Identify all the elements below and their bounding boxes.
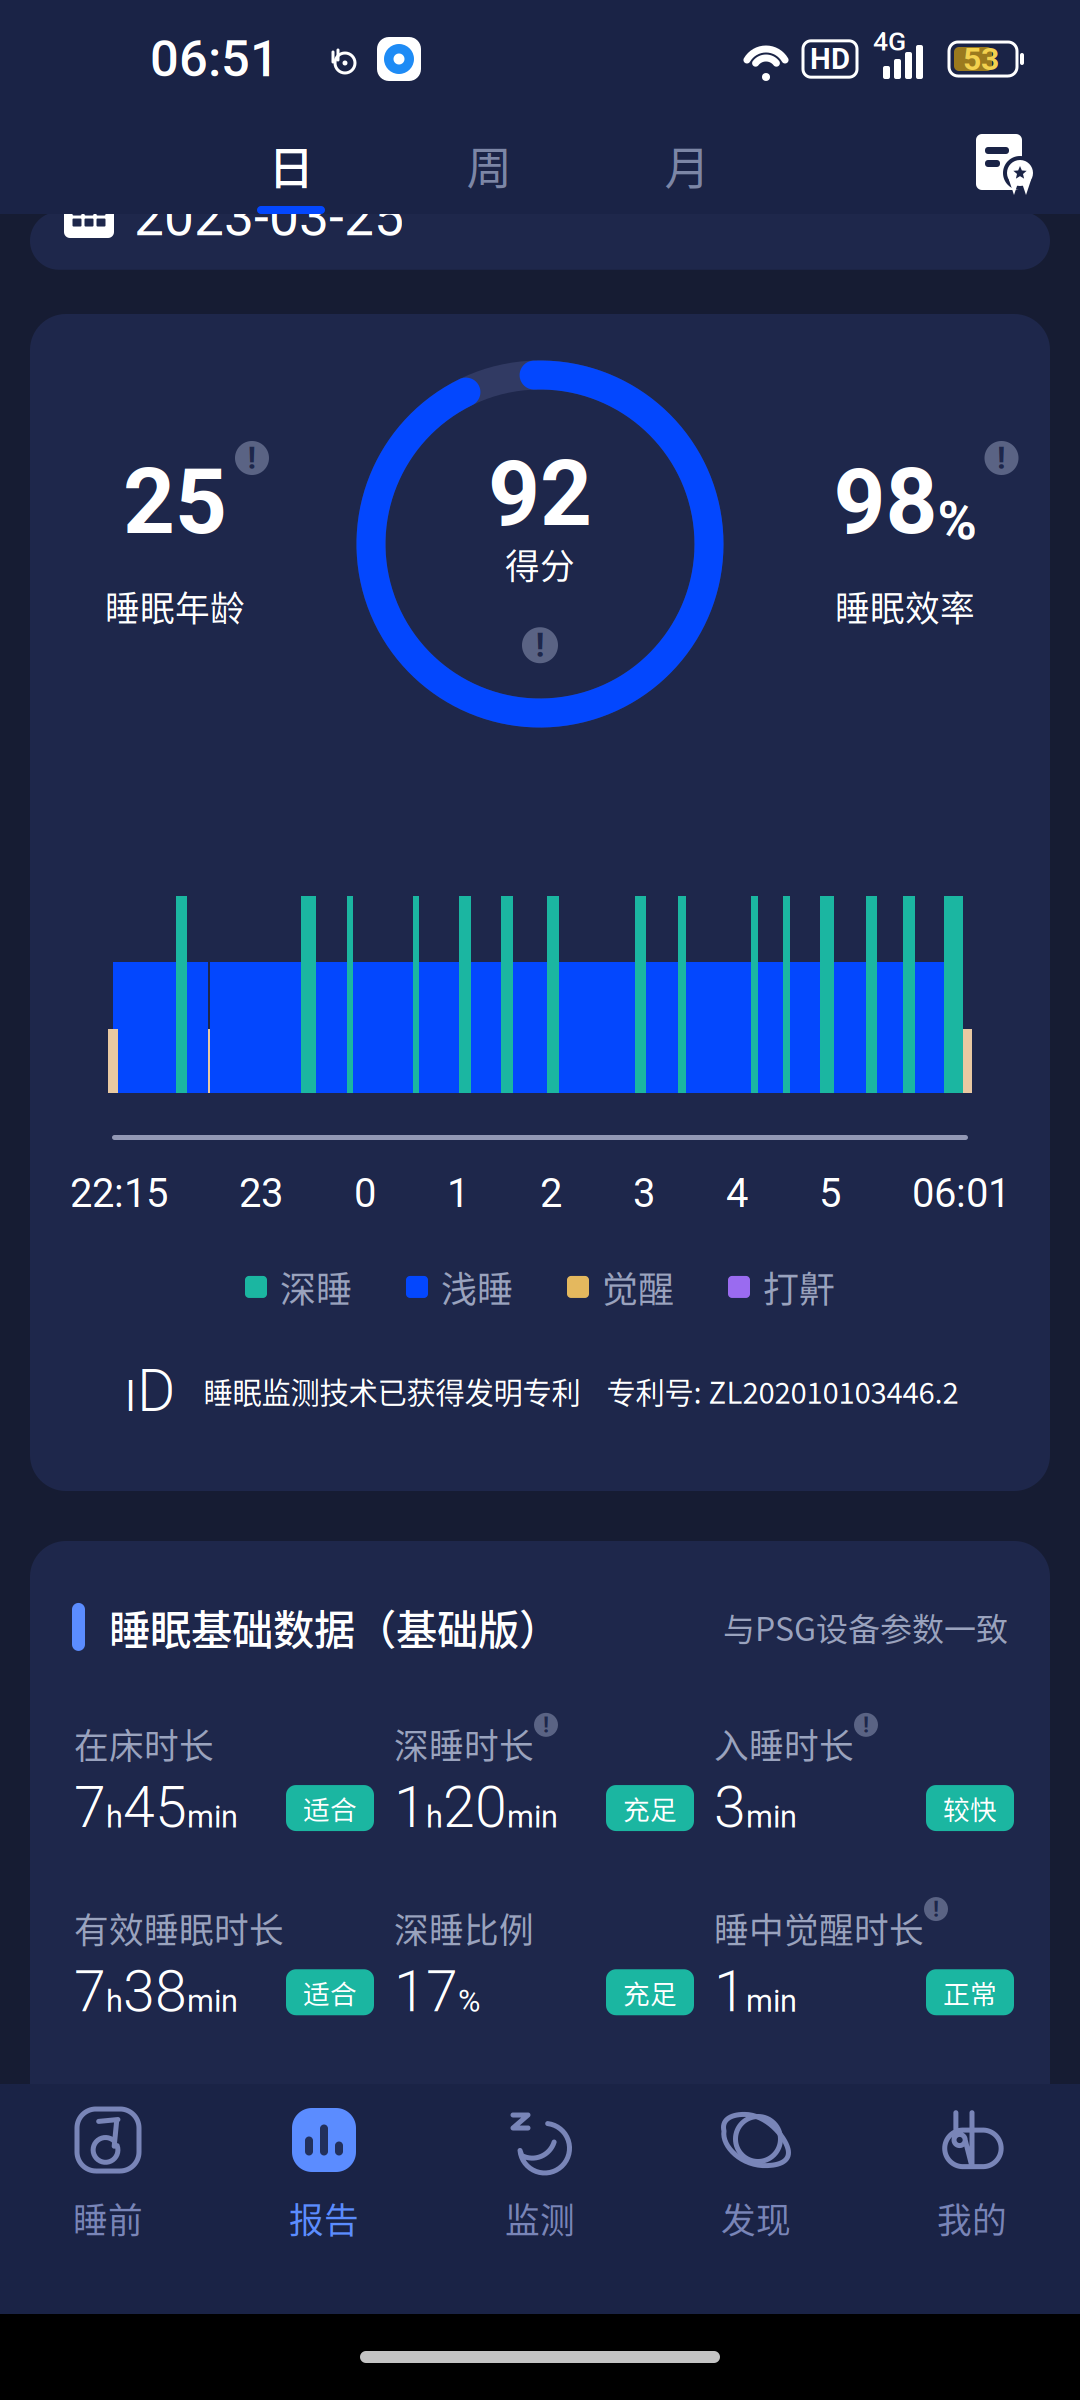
staticText: 20 — [443, 1774, 507, 1841]
staticText: ! — [543, 1712, 549, 1738]
staticText: 较快 — [943, 1789, 997, 1827]
staticText: % — [937, 490, 976, 552]
staticText: 适合 — [303, 1789, 357, 1827]
staticText: 得分 — [505, 539, 575, 589]
staticText: 报告 — [289, 2193, 359, 2243]
staticText: 深睡时长 — [394, 1719, 534, 1769]
staticText: 38 — [123, 1958, 187, 2025]
staticText: 周 — [466, 132, 511, 198]
button[interactable]: 专利证书 — [960, 118, 1056, 214]
staticText: ! — [997, 439, 1006, 477]
staticText: 1 — [714, 1958, 746, 2025]
staticText: 06:01 — [912, 1170, 1010, 1217]
staticText: 我的 — [937, 2193, 1007, 2243]
staticText: 1 — [394, 1774, 426, 1841]
button[interactable]: 监测 — [432, 2061, 648, 2337]
staticText: 4G — [873, 26, 906, 57]
staticText: h — [106, 1799, 123, 1835]
staticText: ! — [535, 625, 544, 665]
staticText: 45 — [123, 1774, 187, 1841]
staticText: 正常 — [943, 1973, 997, 2011]
staticText: 浅睡 — [441, 1261, 513, 1313]
staticText: h — [426, 1799, 443, 1835]
button[interactable]: 报告 — [216, 2061, 432, 2337]
staticText: 22:15 — [70, 1170, 168, 1217]
staticText: 与PSG设备参数一致 — [723, 1604, 1008, 1650]
button[interactable]: 月 — [638, 118, 736, 214]
staticText: min — [507, 1799, 558, 1835]
staticText: 23 — [239, 1170, 283, 1217]
staticText: 入睡时长 — [714, 1719, 854, 1769]
staticText: 睡前 — [73, 2193, 143, 2243]
staticText: 日 — [268, 132, 313, 198]
staticText: 25 — [123, 449, 227, 555]
staticText: 睡眠效率 — [835, 581, 975, 631]
staticText: 有效睡眠时长 — [74, 1903, 284, 1953]
staticText: ıD — [124, 1357, 175, 1425]
staticText: 月 — [664, 132, 709, 198]
staticText: 发现 — [721, 2193, 791, 2243]
staticText: 2 — [540, 1170, 562, 1217]
staticText: 在床时长 — [74, 1719, 214, 1769]
staticText: min — [187, 1799, 238, 1835]
staticText: 4 — [726, 1170, 748, 1217]
staticText: 1 — [447, 1170, 469, 1217]
staticText: 监测 — [505, 2193, 575, 2243]
staticText: 充足 — [623, 1973, 677, 2011]
staticText: 53 — [963, 40, 999, 78]
button[interactable]: 睡前 — [0, 2061, 216, 2337]
staticText: 打鼾 — [763, 1261, 835, 1313]
staticText: 觉醒 — [602, 1261, 674, 1313]
staticText: ! — [863, 1712, 869, 1738]
staticText: 06:51 — [150, 29, 279, 89]
staticText: 专利号: ZL202010103446.2 — [606, 1370, 958, 1412]
staticText: 5 — [819, 1170, 841, 1217]
staticText: 睡眠基础数据（基础版） — [109, 1597, 560, 1657]
staticText: ! — [247, 439, 256, 477]
button[interactable]: 日 — [242, 118, 340, 214]
button[interactable]: 我的 — [864, 2061, 1080, 2337]
button[interactable]: 发现 — [648, 2061, 864, 2337]
staticText: 充足 — [623, 1789, 677, 1827]
staticText: 睡眠监测技术已获得发明专利 — [203, 1370, 580, 1412]
staticText: 深睡 — [280, 1261, 352, 1313]
staticText: 17 — [394, 1958, 458, 2025]
staticText: 睡眠年龄 — [105, 581, 245, 631]
staticText: 睡中觉醒时长 — [714, 1903, 924, 1953]
staticText: h — [106, 1983, 123, 2019]
staticText: 7 — [74, 1958, 106, 2025]
staticText: 深睡比例 — [394, 1903, 534, 1953]
staticText: 3 — [714, 1774, 746, 1841]
button[interactable]: 周 — [440, 118, 538, 214]
staticText: min — [187, 1983, 238, 2019]
staticText: 2023-03-25 — [134, 186, 404, 248]
staticText: % — [458, 1983, 480, 2019]
staticText: 适合 — [303, 1973, 357, 2011]
staticText: 98 — [833, 449, 937, 555]
staticText: HD — [810, 42, 850, 76]
staticText: min — [746, 1799, 797, 1835]
staticText: 3 — [633, 1170, 655, 1217]
staticText: 0 — [354, 1170, 376, 1217]
staticText: 92 — [488, 441, 592, 547]
staticText: min — [746, 1983, 797, 2019]
staticText: ! — [933, 1896, 939, 1922]
staticText: 7 — [74, 1774, 106, 1841]
